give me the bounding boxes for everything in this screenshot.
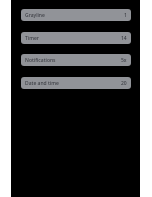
staticText: 14 — [121, 35, 127, 42]
staticText: Date and time — [25, 80, 59, 87]
staticText: 5x — [121, 57, 127, 64]
staticText: 20 — [121, 80, 127, 87]
button[interactable]: Grayline — [21, 9, 131, 21]
staticText: Timer — [25, 35, 39, 42]
staticText: Notifications — [25, 57, 56, 64]
button[interactable]: Date and time — [21, 77, 131, 89]
staticText: 1 — [124, 12, 127, 19]
staticText: Grayline — [25, 12, 45, 19]
button[interactable]: Timer — [21, 32, 131, 44]
button[interactable]: Notifications — [21, 54, 131, 66]
